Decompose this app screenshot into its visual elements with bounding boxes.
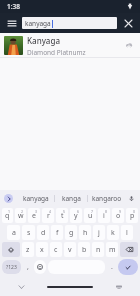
button[interactable]: kanyaga bbox=[22, 17, 117, 29]
staticText: u bbox=[88, 211, 93, 221]
button[interactable]: o bbox=[112, 208, 124, 223]
staticText: o bbox=[116, 211, 121, 221]
staticText: f bbox=[56, 228, 59, 238]
staticText: d bbox=[41, 228, 46, 238]
staticText: kanyaga bbox=[23, 194, 49, 203]
button[interactable]: n bbox=[92, 242, 104, 257]
button[interactable]: Voice input bbox=[126, 193, 136, 203]
staticText: y bbox=[74, 211, 78, 221]
staticText: kangaroo bbox=[92, 194, 122, 203]
button[interactable]: Back bbox=[16, 282, 26, 292]
button[interactable]: s bbox=[22, 225, 35, 240]
staticText: 2 bbox=[21, 209, 24, 214]
staticText: q bbox=[5, 211, 10, 221]
staticText: p bbox=[130, 211, 135, 221]
button[interactable]: z bbox=[22, 242, 34, 257]
button[interactable]: r bbox=[42, 208, 54, 223]
button[interactable]: Kanyaga bbox=[0, 33, 140, 58]
button[interactable]: h bbox=[79, 225, 91, 240]
button[interactable]: k bbox=[107, 225, 119, 240]
staticText: k bbox=[111, 228, 115, 238]
staticText: kanga bbox=[62, 194, 81, 203]
staticText: r bbox=[47, 211, 50, 221]
button[interactable]: kanga bbox=[55, 194, 87, 203]
button[interactable]: d bbox=[37, 225, 49, 240]
button[interactable]: w bbox=[15, 208, 26, 223]
staticText: . bbox=[111, 262, 113, 272]
staticText: b bbox=[82, 245, 87, 255]
button[interactable]: Search bbox=[118, 259, 138, 275]
staticText: g bbox=[69, 228, 74, 238]
button[interactable]: b bbox=[78, 242, 90, 257]
button[interactable]: g bbox=[65, 225, 77, 240]
button[interactable]: p bbox=[126, 208, 138, 223]
staticText: Diamond Platnumz bbox=[27, 48, 86, 57]
button[interactable]: kangaroo bbox=[88, 194, 126, 203]
staticText: t bbox=[61, 211, 64, 221]
button[interactable]: i bbox=[98, 208, 110, 223]
button[interactable]: c bbox=[50, 242, 62, 257]
staticText: 1 bbox=[8, 209, 11, 214]
staticText: a bbox=[12, 228, 16, 238]
button[interactable]: kanyaga bbox=[17, 194, 54, 203]
button[interactable]: Emoji bbox=[34, 260, 46, 274]
staticText: 7 bbox=[91, 209, 94, 214]
staticText: n bbox=[96, 245, 101, 255]
button[interactable]: j bbox=[93, 225, 105, 240]
staticText: ?123 bbox=[6, 264, 17, 271]
button[interactable]: Clear search bbox=[121, 16, 135, 30]
button[interactable]: a bbox=[7, 225, 20, 240]
staticText: 8 bbox=[105, 209, 108, 214]
staticText: , bbox=[27, 262, 29, 272]
staticText: i bbox=[103, 211, 105, 221]
button[interactable]: q bbox=[2, 208, 13, 223]
button[interactable]: f bbox=[51, 225, 63, 240]
staticText: l bbox=[126, 228, 128, 238]
button[interactable]: e bbox=[28, 208, 40, 223]
button[interactable]: m bbox=[106, 242, 118, 257]
button[interactable]: u bbox=[84, 208, 96, 223]
staticText: c bbox=[54, 245, 58, 255]
button[interactable]: v bbox=[64, 242, 76, 257]
staticText: 9 bbox=[119, 209, 122, 214]
button[interactable]: t bbox=[56, 208, 68, 223]
button[interactable]: Home bbox=[47, 286, 93, 288]
staticText: e bbox=[32, 211, 36, 221]
staticText: 0 bbox=[133, 209, 136, 214]
button[interactable]: ?123 bbox=[2, 260, 21, 274]
staticText: s bbox=[27, 228, 31, 238]
button[interactable]: Backspace bbox=[120, 242, 138, 257]
button[interactable]: Download bbox=[122, 39, 136, 53]
button[interactable]: Hide keyboard bbox=[114, 282, 124, 292]
button[interactable]: , bbox=[23, 260, 32, 274]
staticText: x bbox=[40, 245, 44, 255]
button[interactable]: Expand suggestions bbox=[4, 194, 13, 203]
staticText: m bbox=[109, 245, 116, 255]
button[interactable]: x bbox=[36, 242, 48, 257]
staticText: 4 bbox=[49, 209, 52, 214]
staticText: v bbox=[68, 245, 72, 255]
staticText: 5 bbox=[63, 209, 66, 214]
button[interactable]: Shift bbox=[2, 242, 20, 257]
staticText: j bbox=[98, 228, 100, 238]
staticText: kanyaga bbox=[25, 19, 51, 28]
staticText: w bbox=[18, 211, 24, 221]
button[interactable]: l bbox=[121, 225, 133, 240]
staticText: Kanyaga bbox=[27, 35, 60, 46]
staticText: 1:38 bbox=[7, 2, 20, 11]
staticText: z bbox=[26, 245, 30, 255]
button[interactable]: . bbox=[107, 260, 116, 274]
staticText: 3 bbox=[35, 209, 38, 214]
button[interactable]: Menu bbox=[5, 16, 19, 30]
staticText: h bbox=[83, 228, 88, 238]
staticText: 6 bbox=[77, 209, 80, 214]
button[interactable]: y bbox=[70, 208, 82, 223]
